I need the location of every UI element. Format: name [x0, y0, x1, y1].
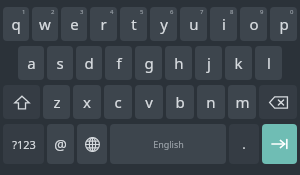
button[interactable]: r [90, 7, 117, 41]
button[interactable]: b [166, 85, 194, 119]
staticText: 4 [110, 8, 114, 16]
button[interactable]: d [76, 46, 102, 80]
button[interactable]: z [43, 85, 70, 119]
button[interactable]: Change language [77, 124, 107, 164]
staticText: k [234, 53, 243, 73]
staticText: u [189, 14, 199, 34]
button[interactable]: i [210, 7, 237, 41]
staticText: j [207, 53, 211, 73]
button[interactable]: Backspace [259, 85, 297, 119]
staticText: 0 [290, 8, 294, 16]
staticText: l [267, 53, 271, 73]
staticText: i [222, 14, 226, 34]
staticText: 2 [51, 8, 55, 16]
button[interactable]: Enter [262, 124, 297, 164]
staticText: c [114, 92, 122, 112]
button[interactable]: h [165, 46, 192, 80]
button[interactable]: q [3, 7, 29, 41]
button[interactable]: e [61, 7, 87, 41]
button[interactable]: m [228, 85, 256, 119]
button[interactable]: f [105, 46, 132, 80]
button[interactable]: English [110, 124, 226, 164]
staticText: 1 [22, 8, 26, 16]
button[interactable]: u [180, 7, 207, 41]
staticText: . [242, 135, 246, 153]
button[interactable]: w [32, 7, 58, 41]
button[interactable]: Shift [3, 85, 40, 119]
button[interactable]: o [240, 7, 267, 41]
button[interactable]: ?123 [3, 124, 44, 164]
staticText: x [83, 92, 91, 112]
button[interactable]: v [135, 85, 163, 119]
button[interactable]: @ [47, 124, 74, 164]
staticText: h [174, 53, 184, 73]
staticText: o [249, 14, 259, 34]
staticText: n [206, 92, 216, 112]
staticText: 8 [230, 8, 234, 16]
button[interactable]: g [135, 46, 162, 80]
button[interactable]: t [120, 7, 147, 41]
staticText: v [145, 92, 153, 112]
button[interactable]: p [270, 7, 297, 41]
button[interactable]: c [104, 85, 132, 119]
staticText: a [27, 53, 36, 73]
button[interactable]: x [73, 85, 101, 119]
staticText: g [144, 53, 154, 73]
staticText: z [53, 92, 61, 112]
staticText: ?123 [12, 137, 36, 152]
button[interactable]: k [225, 46, 252, 80]
staticText: q [11, 14, 21, 34]
staticText: 5 [140, 8, 144, 16]
button[interactable]: a [18, 46, 44, 80]
button[interactable]: y [150, 7, 177, 41]
staticText: b [175, 92, 185, 112]
button[interactable]: l [255, 46, 282, 80]
staticText: d [84, 53, 94, 73]
staticText: 3 [80, 8, 84, 16]
button[interactable]: j [195, 46, 222, 80]
staticText: e [70, 14, 79, 34]
staticText: y [160, 14, 168, 34]
staticText: t [131, 14, 137, 34]
button[interactable]: n [197, 85, 225, 119]
staticText: 6 [170, 8, 174, 16]
staticText: @ [54, 135, 67, 154]
staticText: w [39, 14, 51, 34]
staticText: English [153, 138, 184, 150]
staticText: m [235, 92, 250, 112]
staticText: 7 [200, 8, 204, 16]
button[interactable]: . [229, 124, 259, 164]
staticText: f [116, 53, 122, 73]
staticText: r [100, 14, 107, 34]
staticText: s [56, 53, 64, 73]
staticText: p [279, 14, 289, 34]
button[interactable]: s [47, 46, 73, 80]
staticText: 9 [260, 8, 264, 16]
